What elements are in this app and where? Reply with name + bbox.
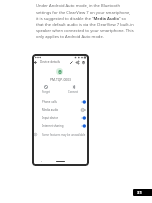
button[interactable]: Input device: [32, 114, 89, 122]
button[interactable]: Delete: [81, 60, 86, 65]
staticText: Some features may be unavailable while i…: [42, 133, 87, 137]
button[interactable]: Connect: [62, 85, 85, 94]
button[interactable]: Media audio: [32, 106, 89, 114]
button[interactable]: Phone calls: [32, 98, 89, 106]
button[interactable]: Back: [33, 60, 38, 65]
staticText: Input device: [42, 116, 59, 120]
button[interactable]: Edit: [69, 60, 74, 65]
button[interactable]: Internet sharing: [32, 122, 89, 130]
staticText: 31: [137, 190, 142, 196]
staticText: Device details: [40, 60, 60, 64]
staticText: Forget: [42, 90, 50, 94]
button[interactable]: Share: [75, 60, 80, 65]
staticText: Internet sharing: [42, 124, 64, 128]
staticText: Phone calls: [42, 100, 57, 104]
staticText: Connect: [68, 90, 79, 94]
staticText: PM-TQP-0003: [32, 77, 89, 81]
button[interactable]: Forget: [34, 85, 57, 94]
button[interactable]: Page 31: [133, 189, 152, 196]
staticText: Media audio: [42, 108, 59, 112]
staticText: Under Android Auto mode, in the Bluetoot…: [36, 3, 142, 39]
